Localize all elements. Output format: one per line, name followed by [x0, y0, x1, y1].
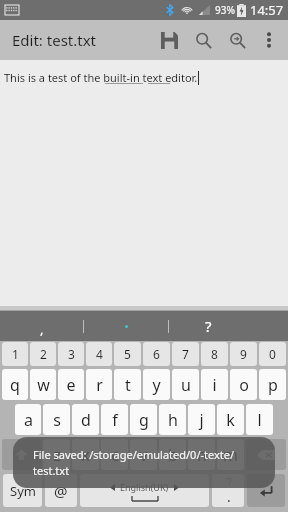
button[interactable]: l: [246, 404, 273, 435]
button[interactable]: j: [188, 404, 215, 435]
button[interactable]: u: [172, 369, 199, 400]
button[interactable]: y: [143, 369, 170, 400]
button[interactable]: 0: [259, 342, 286, 366]
staticText: w: [37, 374, 50, 396]
staticText: p: [268, 374, 278, 396]
staticText: n: [197, 444, 207, 466]
staticText: 9: [240, 346, 247, 362]
button[interactable]: Enter: [247, 474, 285, 507]
button[interactable]: 2: [30, 342, 56, 366]
staticText: "?: [225, 476, 232, 487]
button[interactable]: t: [114, 369, 141, 400]
staticText: m: [223, 444, 238, 466]
button[interactable]: b: [159, 439, 186, 470]
button[interactable]: d: [72, 404, 99, 435]
button[interactable]: f: [101, 404, 128, 435]
button[interactable]: 8: [201, 342, 228, 366]
button[interactable]: 9: [230, 342, 257, 366]
staticText: 3: [68, 346, 75, 362]
button[interactable]: v: [130, 439, 157, 470]
staticText: r: [96, 374, 103, 396]
button[interactable]: s: [43, 404, 70, 435]
staticText: a: [24, 409, 33, 431]
button[interactable]: h: [159, 404, 186, 435]
button[interactable]: r: [86, 369, 112, 400]
button[interactable]: 6: [143, 342, 170, 366]
button[interactable]: k: [217, 404, 244, 435]
staticText: f: [112, 409, 118, 431]
button[interactable]: 4: [86, 342, 112, 366]
staticText: English(UK): [120, 481, 169, 493]
button[interactable]: 5: [114, 342, 141, 366]
button[interactable]: Sym: [3, 474, 42, 507]
button[interactable]: Period: [212, 474, 244, 507]
staticText: y: [152, 374, 161, 396]
staticText: k: [226, 409, 235, 431]
staticText: t: [125, 374, 131, 396]
button[interactable]: o: [230, 369, 257, 400]
button[interactable]: i: [201, 369, 228, 400]
staticText: 1: [12, 346, 19, 362]
staticText: u: [181, 374, 191, 396]
staticText: q: [10, 374, 20, 396]
staticText: ,: [40, 320, 44, 338]
staticText: 4: [96, 346, 103, 362]
button[interactable]: 1: [2, 342, 28, 366]
button[interactable]: Save: [152, 23, 186, 57]
staticText: 14:57: [250, 1, 284, 19]
button[interactable]: w: [30, 369, 56, 400]
staticText: .: [227, 487, 231, 506]
button[interactable]: Shift: [2, 439, 41, 470]
staticText: 93%: [215, 3, 235, 17]
button[interactable]: Space, English UK: [80, 474, 209, 507]
button[interactable]: Search: [186, 23, 220, 57]
button[interactable]: n: [188, 439, 215, 470]
button[interactable]: x: [72, 439, 99, 470]
button[interactable]: e: [58, 369, 84, 400]
staticText: v: [139, 444, 148, 466]
staticText: s: [53, 409, 61, 431]
button[interactable]: q: [2, 369, 28, 400]
staticText: 5: [124, 346, 131, 362]
staticText: 7: [182, 346, 189, 362]
staticText: h: [168, 409, 178, 431]
staticText: This is a test of the built-in text edit…: [4, 70, 198, 85]
staticText: Sym: [10, 482, 36, 500]
staticText: Edit: test.txt: [12, 30, 152, 50]
staticText: 6: [153, 346, 160, 362]
staticText: c: [111, 444, 119, 466]
button[interactable]: More options: [254, 25, 284, 55]
button[interactable]: a: [15, 404, 41, 435]
staticText: g: [139, 409, 149, 431]
button[interactable]: Backspace: [246, 439, 286, 470]
staticText: d: [81, 409, 91, 431]
staticText: x: [81, 444, 90, 466]
staticText: o: [239, 374, 249, 396]
button[interactable]: 7: [172, 342, 199, 366]
staticText: ?: [205, 316, 212, 336]
button[interactable]: m: [217, 439, 244, 470]
button[interactable]: g: [130, 404, 157, 435]
staticText: z: [53, 444, 61, 466]
button[interactable]: z: [43, 439, 70, 470]
staticText: i: [212, 374, 217, 396]
staticText: e: [66, 374, 76, 396]
staticText: l: [257, 409, 262, 431]
staticText: b: [168, 444, 178, 466]
button[interactable]: p: [259, 369, 286, 400]
button[interactable]: At sign: [45, 474, 77, 507]
staticText: 0: [269, 346, 276, 362]
staticText: @: [54, 481, 68, 501]
staticText: 2: [40, 346, 47, 362]
button[interactable]: 3: [58, 342, 84, 366]
staticText: 8: [211, 346, 218, 362]
staticText: j: [199, 409, 204, 431]
button[interactable]: c: [101, 439, 128, 470]
button[interactable]: Search next: [220, 23, 254, 57]
staticText: File saved: /storage/emulated/0/-texte/ …: [33, 447, 235, 478]
